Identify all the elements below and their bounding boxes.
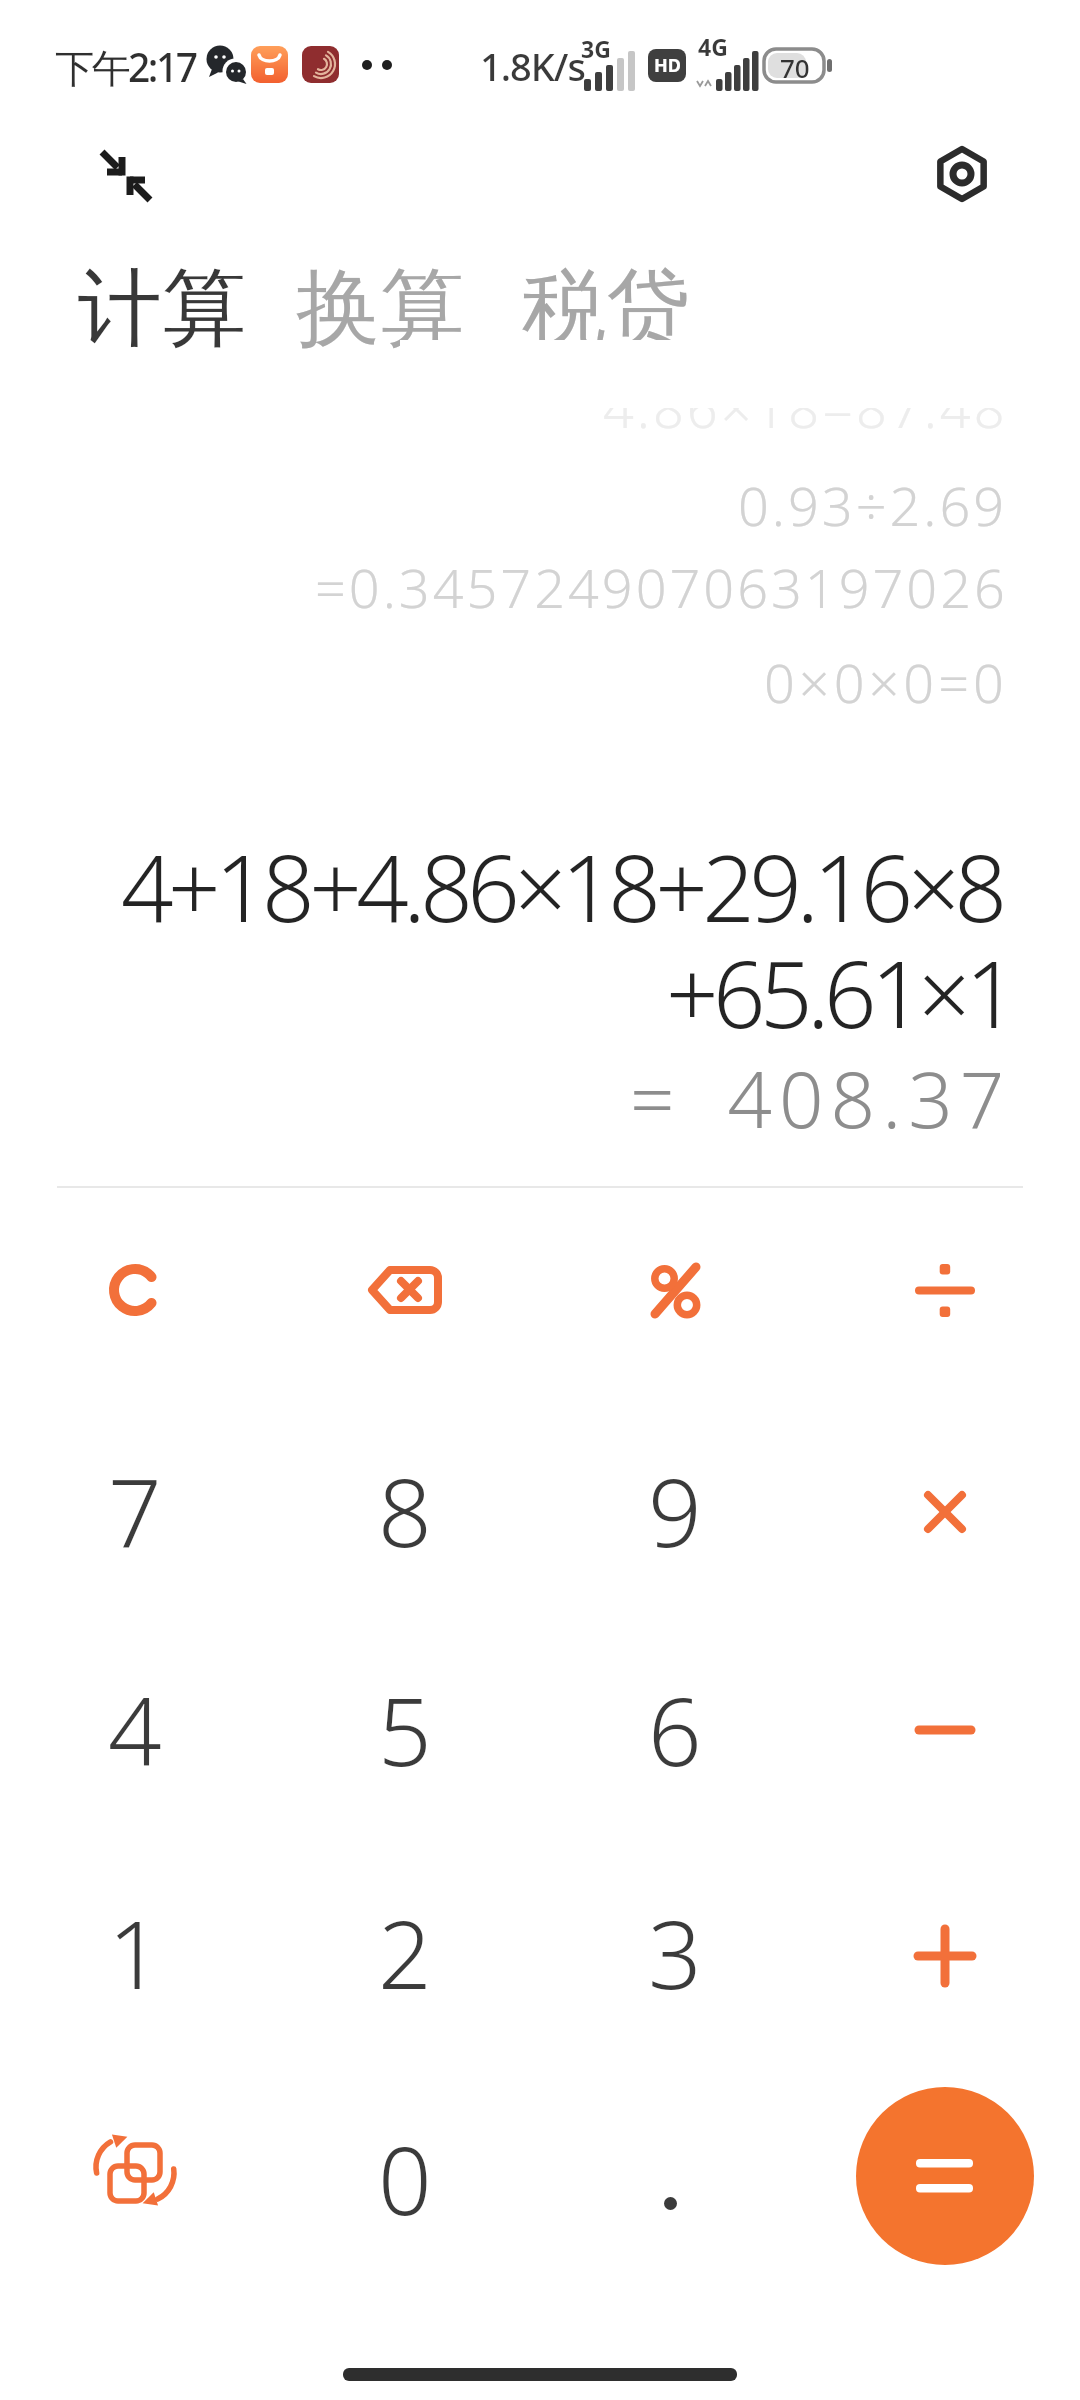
button[interactable]: 2 [295,1867,515,2037]
button[interactable] [928,140,996,208]
staticText: +65.61×1 [666,930,1013,1055]
button[interactable]: 换算 [296,256,464,362]
staticText: 0 [378,2115,432,2243]
button[interactable] [25,1205,245,1375]
button[interactable] [85,135,170,220]
staticText: HD [654,53,681,78]
button[interactable] [856,2087,1034,2265]
staticText: 2 [378,1889,432,2017]
staticText: 1 [108,1889,162,2017]
button[interactable]: 5 [295,1651,515,1821]
button[interactable] [835,1205,1055,1375]
button[interactable]: 8 [295,1429,515,1599]
staticText: 0.93÷2.69 [738,468,1008,542]
button[interactable] [565,1205,785,1375]
button[interactable]: 6 [565,1651,785,1821]
button[interactable]: 7 [25,1429,245,1599]
staticText: 7 [108,1447,162,1575]
button[interactable]: 9 [565,1429,785,1599]
button[interactable]: 计算 [78,256,246,362]
staticText: 3G [581,33,611,64]
staticText: 下午2:17 [55,40,196,93]
staticText: 5 [378,1666,432,1794]
button[interactable]: 4 [25,1651,245,1821]
button[interactable]: 0 [295,2091,515,2261]
button[interactable] [835,1429,1055,1599]
button[interactable] [835,1867,1055,2037]
button[interactable] [835,1651,1055,1821]
staticText: =0.345724907063197026 [315,550,1008,624]
staticText: = 408.37 [630,1045,1012,1151]
staticText: 0×0×0=0 [764,645,1008,719]
staticText: 4 [108,1666,162,1794]
button[interactable]: 税贷 [522,256,690,362]
staticText: 8 [378,1447,432,1575]
staticText: 70 [780,50,810,85]
staticText: 4.86×18=87.48 [603,370,1008,444]
button[interactable]: 3 [565,1867,785,2037]
button[interactable] [295,1205,515,1375]
button[interactable] [25,2091,245,2261]
staticText: 6 [648,1666,702,1794]
staticText: 3 [648,1889,702,2017]
button[interactable]: 1 [25,1867,245,2037]
button[interactable] [565,2091,785,2261]
staticText: 9 [648,1447,702,1575]
staticText: 4G [698,31,728,62]
staticText: 1.8K/s [480,40,585,92]
staticText: 4+18+4.86×18+29.16×8 [121,824,1002,949]
